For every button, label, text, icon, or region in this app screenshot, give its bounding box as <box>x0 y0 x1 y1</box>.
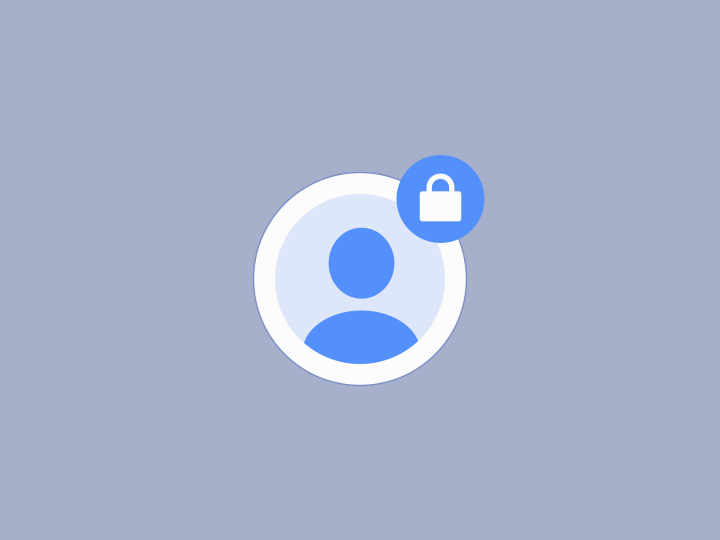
button[interactable]: Locked account <box>253 172 466 385</box>
